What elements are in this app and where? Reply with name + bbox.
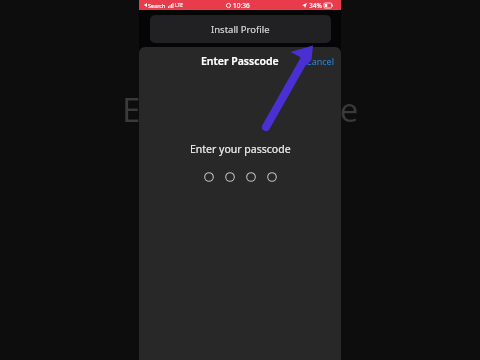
staticText: Enter Passcode	[201, 54, 279, 68]
staticText: 10:36	[233, 1, 250, 10]
staticText: Cancel	[306, 55, 335, 67]
staticText: LTE	[175, 2, 184, 9]
staticText: Enter your passcode	[190, 142, 291, 156]
staticText: Install Profile	[211, 23, 270, 36]
staticText: Enter Passcode	[122, 87, 359, 132]
staticText: Search	[148, 2, 166, 9]
staticText: 34%	[309, 1, 322, 10]
button[interactable]: Install Profile	[150, 15, 331, 43]
button[interactable]: Cancel	[306, 55, 335, 67]
